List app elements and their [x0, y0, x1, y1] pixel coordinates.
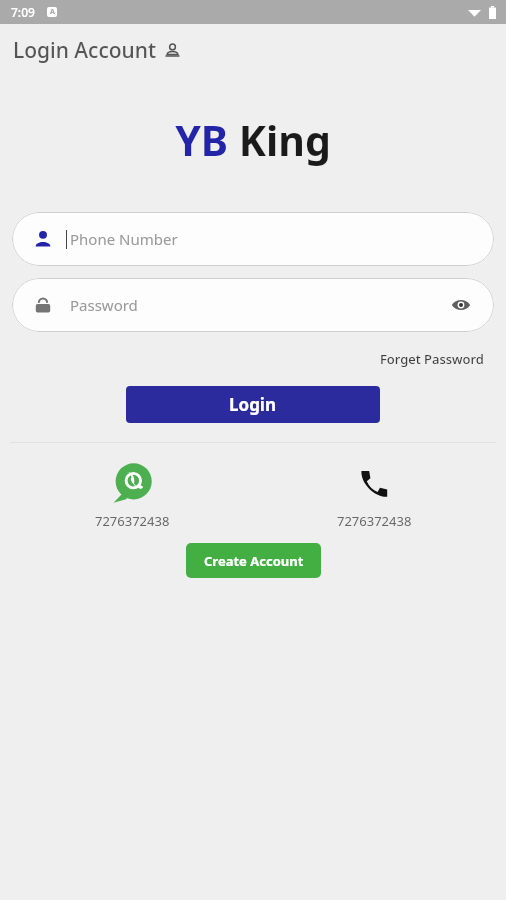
staticText: Login Account	[13, 36, 156, 65]
button[interactable]: Login	[126, 386, 380, 423]
button[interactable]: 7276372438	[294, 462, 454, 530]
staticText: Login	[229, 393, 277, 416]
staticText: Phone Number	[70, 229, 178, 249]
staticText: Forget Password	[380, 350, 484, 368]
button[interactable]: Password	[12, 278, 494, 332]
staticText: 7276372438	[337, 512, 412, 530]
button[interactable]: Forget Password	[376, 346, 488, 372]
staticText: 7:09	[11, 4, 35, 20]
staticText: YB King	[175, 112, 331, 168]
staticText: Create Account	[204, 552, 304, 570]
button[interactable]: Phone Number	[12, 212, 494, 266]
button[interactable]: Show password	[448, 292, 474, 318]
staticText: Password	[70, 295, 448, 315]
button[interactable]: 7276372438	[52, 462, 212, 530]
staticText: A	[50, 7, 55, 17]
button[interactable]: Create Account	[186, 543, 321, 578]
staticText: 7276372438	[95, 512, 170, 530]
